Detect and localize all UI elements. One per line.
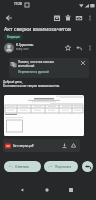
button[interactable]: Close <box>79 59 86 66</box>
staticText: Ответить <box>15 165 30 169</box>
button[interactable]: Home <box>41 184 53 196</box>
button[interactable]: Star <box>62 42 74 54</box>
button[interactable]: More options <box>84 12 96 24</box>
button[interactable] <box>4 95 84 136</box>
staticText: К.Грушевич <box>16 43 34 47</box>
button[interactable]: Похоже, что язык письма <box>9 58 89 78</box>
button[interactable]: Акт сверки.pdf <box>3 139 80 152</box>
button[interactable]: Ответить <box>4 161 41 172</box>
button[interactable]: Back <box>16 184 28 196</box>
staticText: кому: мне <box>16 47 29 51</box>
button[interactable]: Save to Drive <box>69 141 78 150</box>
staticText: Акт сверки.pdf <box>13 144 34 148</box>
staticText: Акт сверки взаимозачетов <box>4 25 71 32</box>
staticText: Похоже, что язык письма <box>18 60 54 64</box>
button[interactable]: Reply all <box>82 161 93 172</box>
staticText: Входящие <box>7 35 20 39</box>
button[interactable]: Back <box>3 12 15 24</box>
button[interactable]: Download <box>60 141 69 150</box>
button[interactable]: Delete <box>62 12 74 24</box>
staticText: Переслать <box>55 165 72 169</box>
staticText: Добрый день, <box>3 80 23 84</box>
staticText: английский <box>18 64 35 68</box>
button[interactable]: Переслать <box>44 161 78 172</box>
button[interactable]: Archive <box>51 12 63 24</box>
button[interactable]: Mark as unread <box>73 12 85 24</box>
staticText: Перевести на русский <box>18 70 49 74</box>
staticText: 17:28 <box>14 2 22 6</box>
button[interactable]: Recent apps <box>65 184 77 196</box>
staticText: Во вложении акт сверки взаимозачетов. <box>3 84 61 88</box>
button[interactable]: More <box>84 42 96 54</box>
button[interactable]: Reply <box>73 42 85 54</box>
button[interactable]: Входящие <box>4 34 23 40</box>
